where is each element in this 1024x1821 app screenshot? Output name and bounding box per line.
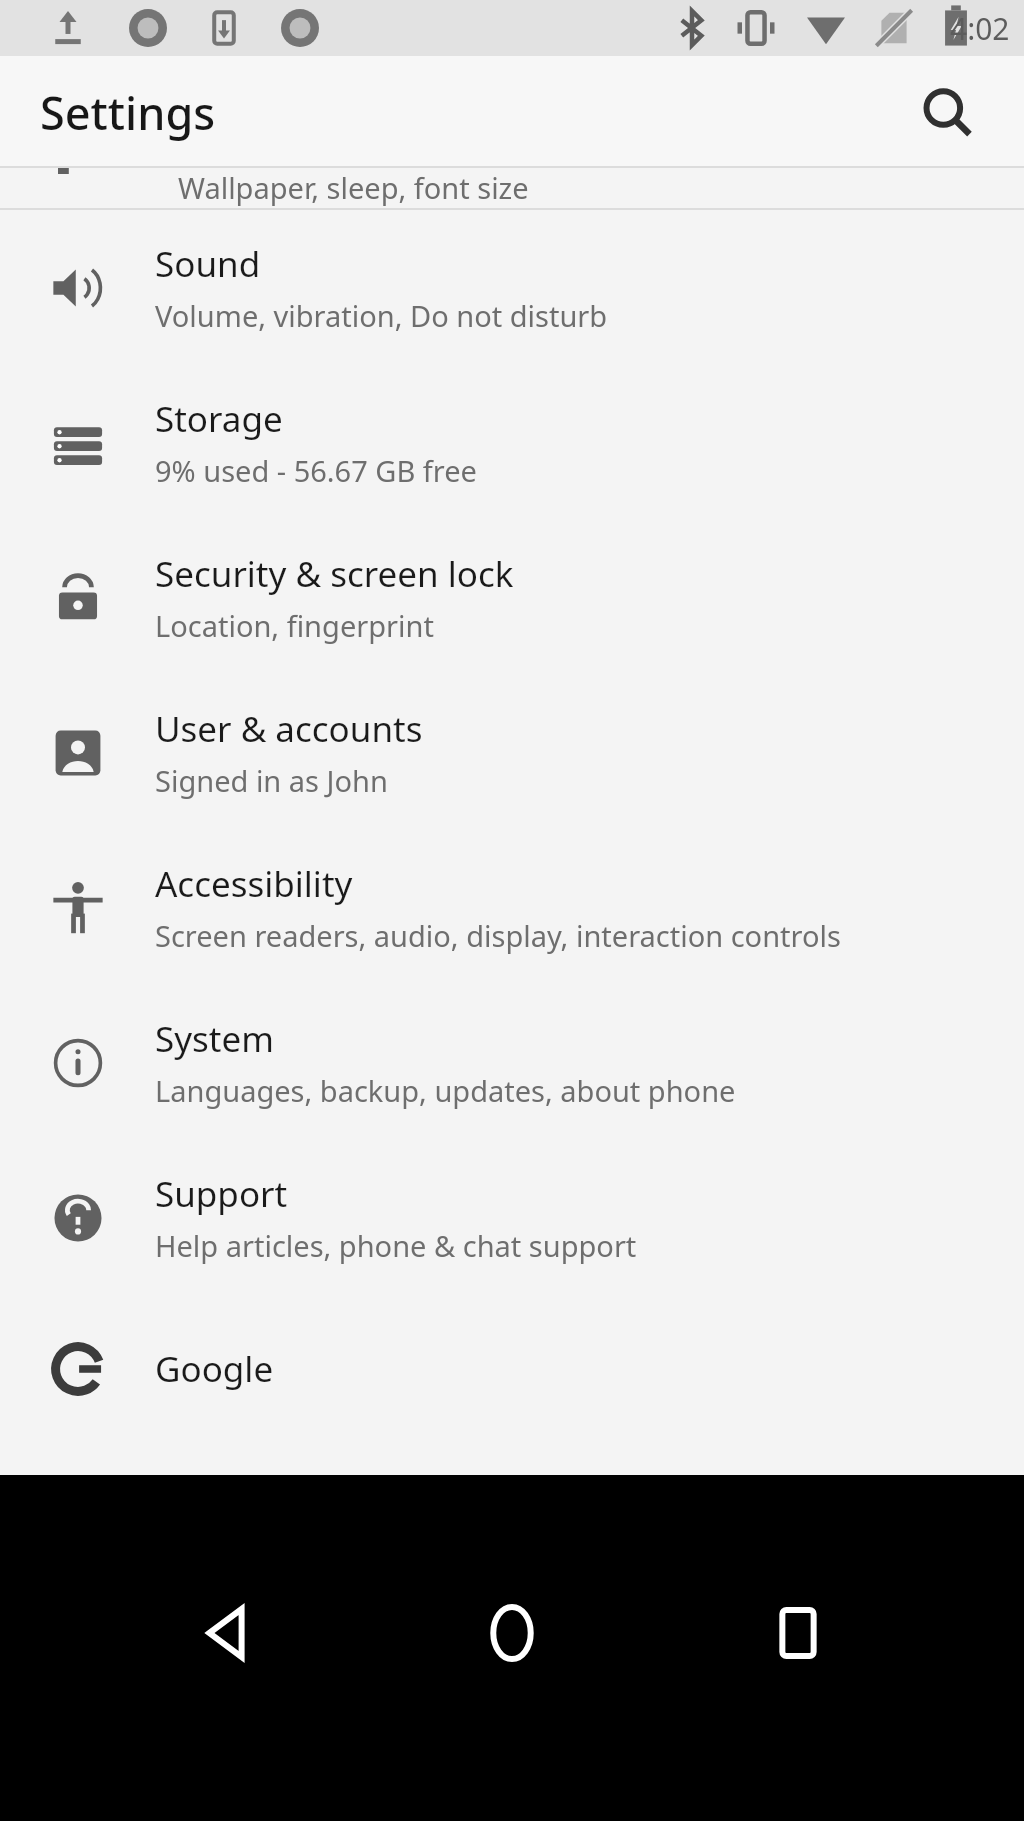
button[interactable]: Security & screen lock <box>0 520 1024 675</box>
button[interactable]: Sound <box>0 210 1024 365</box>
staticText: Sound <box>155 240 261 288</box>
button[interactable]: Accessibility <box>0 830 1024 985</box>
button[interactable]: Search <box>898 64 994 160</box>
staticText: Screen readers, audio, display, interact… <box>155 916 841 955</box>
staticText: Languages, backup, updates, about phone <box>155 1071 736 1110</box>
button[interactable]: Wallpaper, sleep, font size <box>0 168 1024 208</box>
staticText: 9% used - 56.67 GB free <box>155 451 477 490</box>
button[interactable]: Back <box>166 1573 286 1693</box>
staticText: Accessibility <box>155 860 353 908</box>
button[interactable]: Google <box>0 1295 1024 1443</box>
button[interactable]: User & accounts <box>0 675 1024 830</box>
staticText: Storage <box>155 395 283 443</box>
button[interactable]: System <box>0 985 1024 1140</box>
staticText: Volume, vibration, Do not disturb <box>155 296 608 335</box>
button[interactable]: Storage <box>0 365 1024 520</box>
staticText: Signed in as John <box>155 761 388 800</box>
button[interactable]: Home <box>452 1573 572 1693</box>
staticText: Help articles, phone & chat support <box>155 1226 637 1265</box>
staticText: Google <box>155 1345 274 1393</box>
staticText: User & accounts <box>155 705 423 753</box>
staticText: Settings <box>40 82 216 143</box>
staticText: Support <box>155 1170 288 1218</box>
button[interactable]: Support <box>0 1140 1024 1295</box>
staticText: 4:02 <box>950 8 1010 49</box>
staticText: System <box>155 1015 274 1063</box>
button[interactable]: Recent apps <box>738 1573 858 1693</box>
staticText: Security & screen lock <box>155 550 514 598</box>
staticText: Wallpaper, sleep, font size <box>178 168 529 207</box>
staticText: Location, fingerprint <box>155 606 434 645</box>
